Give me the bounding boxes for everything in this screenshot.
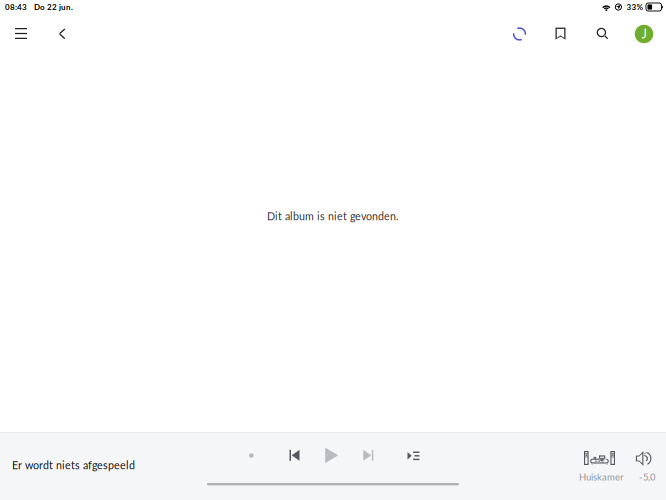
staticText: Do 22 jun.: [34, 2, 73, 12]
button[interactable]: Bookmarks: [540, 14, 580, 54]
staticText: J: [641, 26, 646, 41]
button[interactable]: Account: [624, 14, 664, 54]
button[interactable]: Huiskamer: [578, 451, 621, 484]
button[interactable]: Next: [354, 442, 382, 468]
button[interactable]: Search: [582, 14, 622, 54]
button[interactable]: Loading: [499, 14, 539, 54]
staticText: Huiskamer: [579, 471, 623, 483]
button[interactable]: Play: [317, 442, 347, 468]
staticText: 33%: [626, 2, 643, 12]
staticText: -5,0: [639, 471, 655, 483]
button[interactable]: Menu: [0, 13, 42, 53]
button[interactable]: Queue: [398, 443, 428, 469]
staticText: 08:43: [5, 2, 27, 12]
button[interactable]: -5,0: [634, 451, 658, 484]
staticText: Er wordt niets afgespeeld: [12, 459, 135, 471]
button[interactable]: Back: [42, 14, 82, 54]
staticText: Dit album is niet gevonden.: [267, 210, 399, 222]
button[interactable]: Previous: [280, 442, 308, 468]
button[interactable]: Shuffle: [238, 442, 264, 468]
